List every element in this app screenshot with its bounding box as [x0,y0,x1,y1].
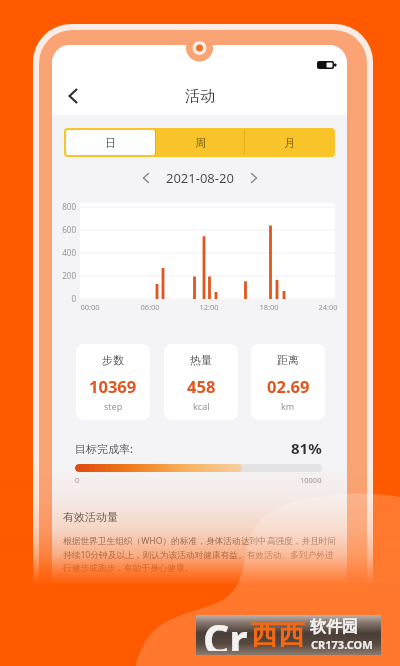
staticText: 步数 [102,353,124,367]
button[interactable]: Back [52,77,94,115]
staticText: 200 [52,270,76,281]
staticText: 400 [52,247,76,258]
staticText: 0 [75,475,80,485]
staticText: kcal [193,400,210,412]
staticText: 10369 [89,375,137,397]
staticText: 458 [187,375,216,397]
staticText: 西西 [251,618,305,652]
staticText: 800 [52,201,76,212]
button[interactable]: 月 [245,130,333,155]
staticText: Cr [203,611,248,651]
staticText: 12:00 [193,302,225,312]
button[interactable]: 日 [66,130,155,155]
staticText: 02.69 [267,375,310,397]
staticText: km [281,400,295,412]
staticText: 10000 [300,475,322,485]
staticText: 软件园 [310,617,358,637]
button[interactable]: 步数 [76,344,150,420]
staticText: CR173.COM [311,637,373,652]
staticText: step [104,400,123,412]
staticText: 00:00 [74,302,106,312]
button[interactable]: 距离 [251,344,325,420]
staticText: 600 [52,224,76,235]
staticText: 热量 [190,353,212,367]
staticText: 24:00 [312,302,344,312]
staticText: 活动 [185,87,215,106]
staticText: 有效活动量 [63,510,118,524]
button[interactable]: 热量 [164,344,238,420]
staticText: 2021-08-20 [166,169,234,187]
button[interactable]: Previous day [134,166,158,190]
staticText: 距离 [277,353,299,367]
button[interactable]: Next day [242,166,266,190]
staticText: 18:00 [253,302,285,312]
staticText: 根据世界卫生组织（WHO）的标准，身体活动达到中高强度，并且时间持续10分钟及以… [63,535,339,573]
staticText: 周 [195,136,206,150]
button[interactable]: 周 [156,130,244,155]
staticText: 月 [284,136,295,150]
staticText: 0 [52,293,76,304]
staticText: 目标完成率: [75,441,133,456]
staticText: 06:00 [134,302,166,312]
staticText: 81% [291,438,322,458]
staticText: 日 [105,136,116,150]
